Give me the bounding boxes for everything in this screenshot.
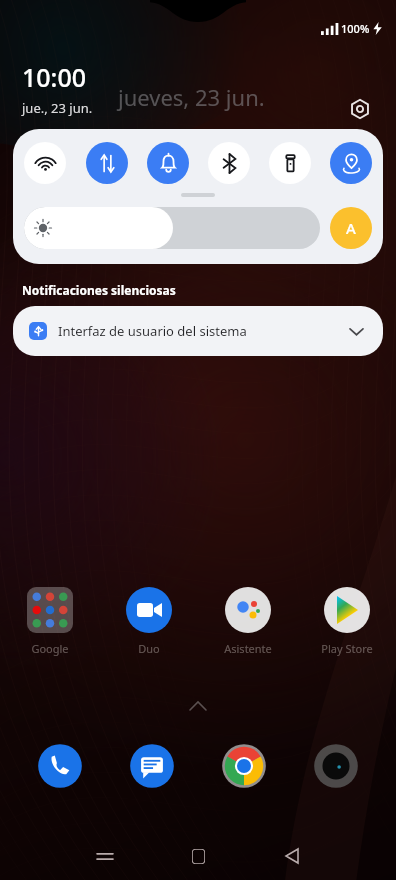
staticText: A xyxy=(346,218,356,238)
button[interactable]: Settings xyxy=(346,95,374,123)
button[interactable]: Auto brightness xyxy=(330,207,372,249)
staticText: Interfaz de usuario del sistema xyxy=(58,322,247,340)
staticText: jue., 23 jun. xyxy=(22,99,93,117)
button[interactable]: Chrome xyxy=(198,740,290,792)
button[interactable]: Camera xyxy=(290,740,382,792)
staticText: Google xyxy=(31,641,69,656)
button[interactable]: Location xyxy=(330,142,372,184)
staticText: Asistente xyxy=(224,641,272,656)
button[interactable]: Home xyxy=(152,832,245,880)
staticText: 10:00 xyxy=(22,60,87,94)
button[interactable]: Interfaz de usuario del sistema xyxy=(13,306,383,356)
staticText: jueves, 23 jun. xyxy=(118,82,265,112)
button[interactable]: Expand xyxy=(345,320,367,342)
button[interactable]: Back xyxy=(245,832,338,880)
button[interactable]: Recents xyxy=(58,832,152,880)
button[interactable]: Expand quick settings xyxy=(181,193,215,197)
staticText: Play Store xyxy=(321,641,373,656)
staticText: Notificaciones silenciosas xyxy=(22,282,176,298)
button[interactable]: Notifications xyxy=(147,142,189,184)
button[interactable]: Bluetooth xyxy=(208,142,250,184)
staticText: 100% xyxy=(341,21,370,36)
button[interactable]: Mobile data xyxy=(86,142,128,184)
button[interactable]: Asistente xyxy=(198,585,297,656)
button[interactable]: Flashlight xyxy=(269,142,311,184)
button[interactable]: Wi-Fi xyxy=(24,142,66,184)
button[interactable]: Messages xyxy=(106,740,198,792)
button[interactable]: Brightness xyxy=(24,207,320,249)
button[interactable]: Play Store xyxy=(297,585,396,656)
button[interactable]: Phone xyxy=(14,740,106,792)
button[interactable]: Google xyxy=(0,585,99,656)
button[interactable]: Duo xyxy=(99,585,198,656)
staticText: Duo xyxy=(138,641,160,656)
